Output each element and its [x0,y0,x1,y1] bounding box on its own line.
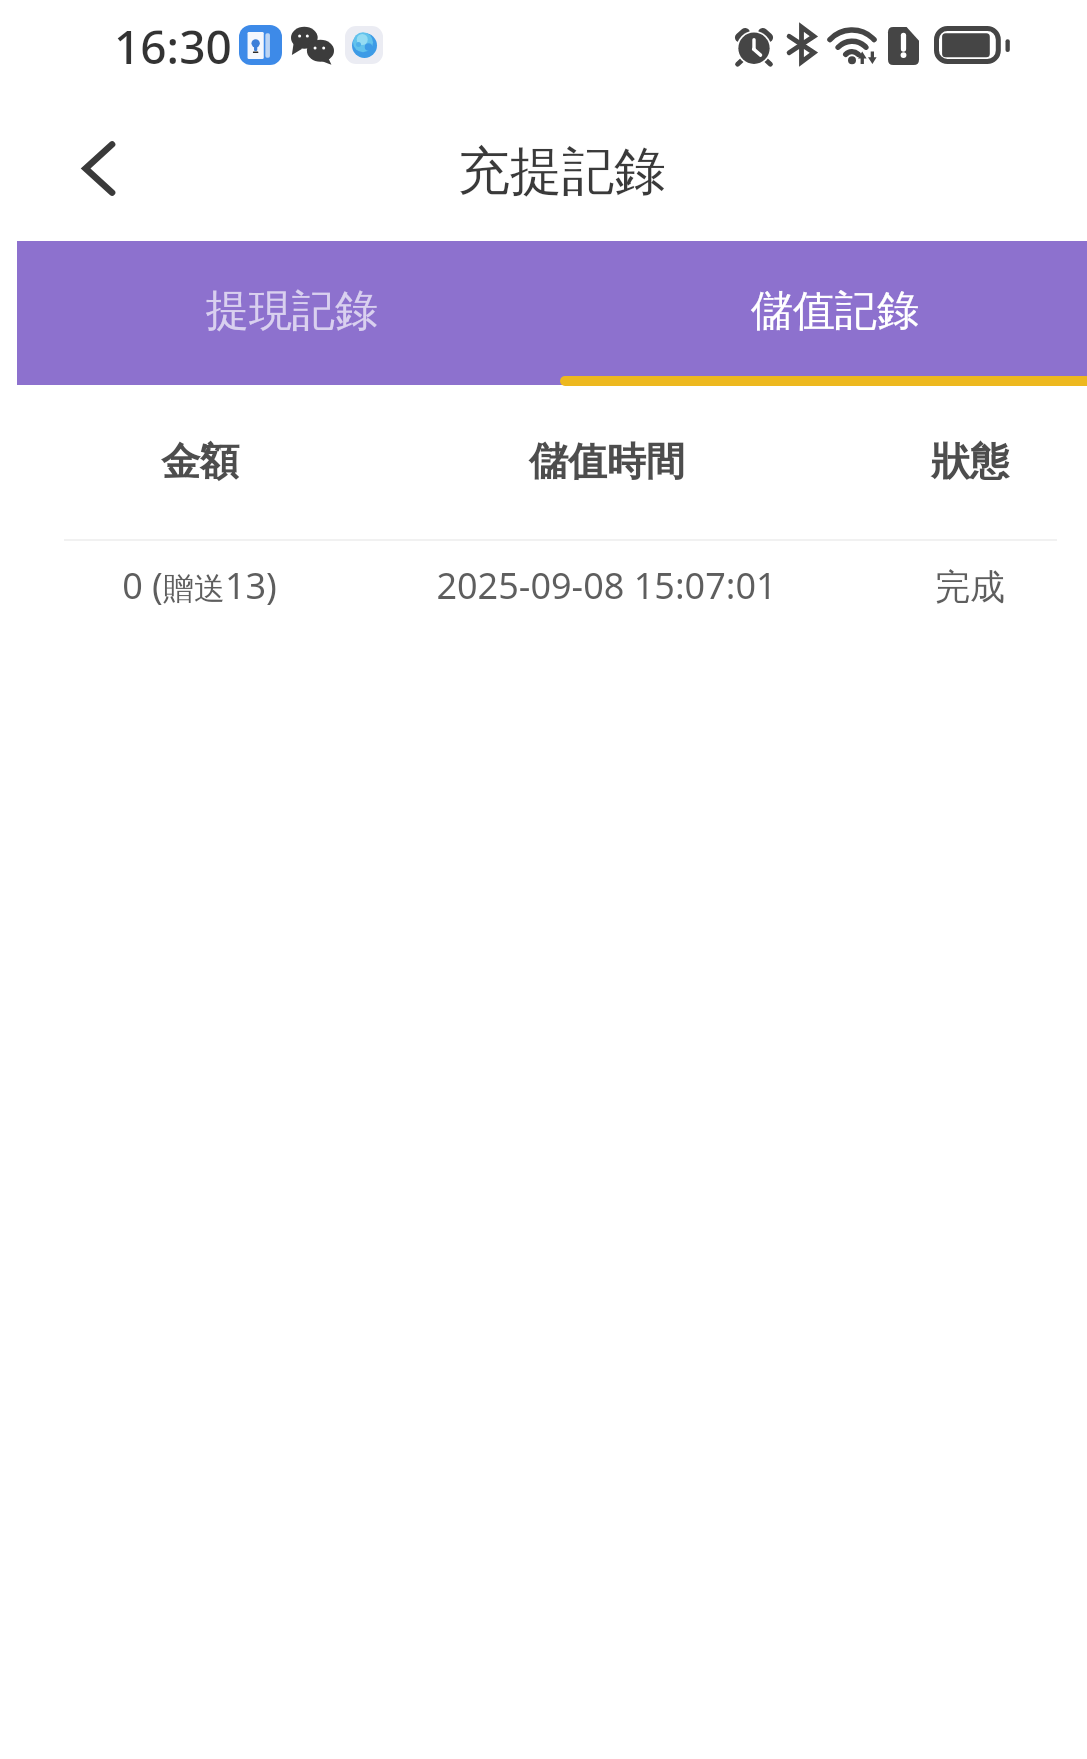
staticText: 儲值記錄 [751,285,919,338]
staticText: 狀態 [931,437,1009,486]
button[interactable]: 儲值記錄 [552,241,1087,385]
staticText: 提現記錄 [206,284,378,338]
button[interactable]: 提現記錄 [17,241,552,385]
staticText: 完成 [935,565,1005,609]
staticText: 金額 [161,437,239,486]
staticText: 充提記錄 [458,139,666,205]
staticText: 2025-09-08 15:07:01 [436,561,777,610]
staticText: 16:30 [114,15,232,78]
button[interactable]: Back [61,130,137,206]
staticText: 儲值時間 [529,437,685,486]
button[interactable]: 0 (贈送13) [0,545,1087,625]
staticText: 0 (贈送13) [122,561,277,610]
